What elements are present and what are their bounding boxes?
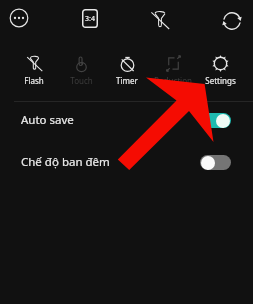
button[interactable]: Settings xyxy=(190,47,250,89)
button[interactable]: Auto save xyxy=(0,101,253,139)
staticText: Reduction xyxy=(154,75,192,86)
staticText: Touch xyxy=(70,75,93,86)
staticText: Settings xyxy=(205,75,236,86)
button[interactable]: Flash off xyxy=(141,1,179,39)
button[interactable]: Chế độ ban đêm xyxy=(0,143,253,181)
button[interactable]: Touch xyxy=(51,47,111,89)
staticText: 3:4 xyxy=(85,14,95,24)
button[interactable]: Timer xyxy=(97,47,157,89)
button[interactable]: Switch camera xyxy=(213,2,251,40)
button[interactable]: Reduction xyxy=(143,47,203,89)
button[interactable]: Turn off xyxy=(200,113,231,128)
staticText: Auto save xyxy=(21,112,74,128)
button[interactable]: Turn on xyxy=(200,155,231,170)
staticText: Timer xyxy=(116,75,138,86)
button[interactable]: Aspect ratio 3 to 4 xyxy=(82,9,98,28)
staticText: Chế độ ban đêm xyxy=(21,154,110,170)
button[interactable]: More options xyxy=(0,0,38,37)
staticText: Flash xyxy=(24,75,44,86)
button[interactable]: Flash xyxy=(4,47,64,89)
